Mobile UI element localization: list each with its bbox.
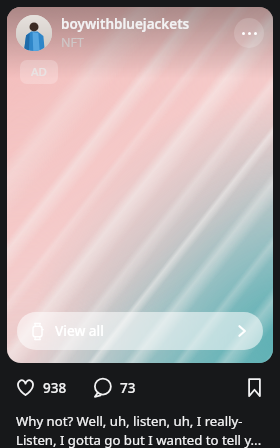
button[interactable]: 938 [16,376,67,399]
button[interactable]: 73 [93,376,136,399]
button[interactable]: Save [245,376,264,399]
button[interactable]: Why not? Well, uh, listen, uh, I really-… [16,412,266,448]
staticText: Why not? Well, uh, listen, uh, I really-… [16,412,266,448]
button[interactable]: View all [17,312,263,350]
staticText: 938 [43,379,67,397]
staticText: View all [55,322,104,340]
button[interactable]: boywithbluejackets [61,15,234,51]
button[interactable]: More options [234,18,264,48]
staticText: boywithbluejackets [61,15,190,33]
staticText: AD [31,64,47,80]
button[interactable]: AD [20,60,58,84]
staticText: NFT [61,34,84,51]
button[interactable]: Profile photo [16,15,52,51]
staticText: 73 [120,379,136,397]
